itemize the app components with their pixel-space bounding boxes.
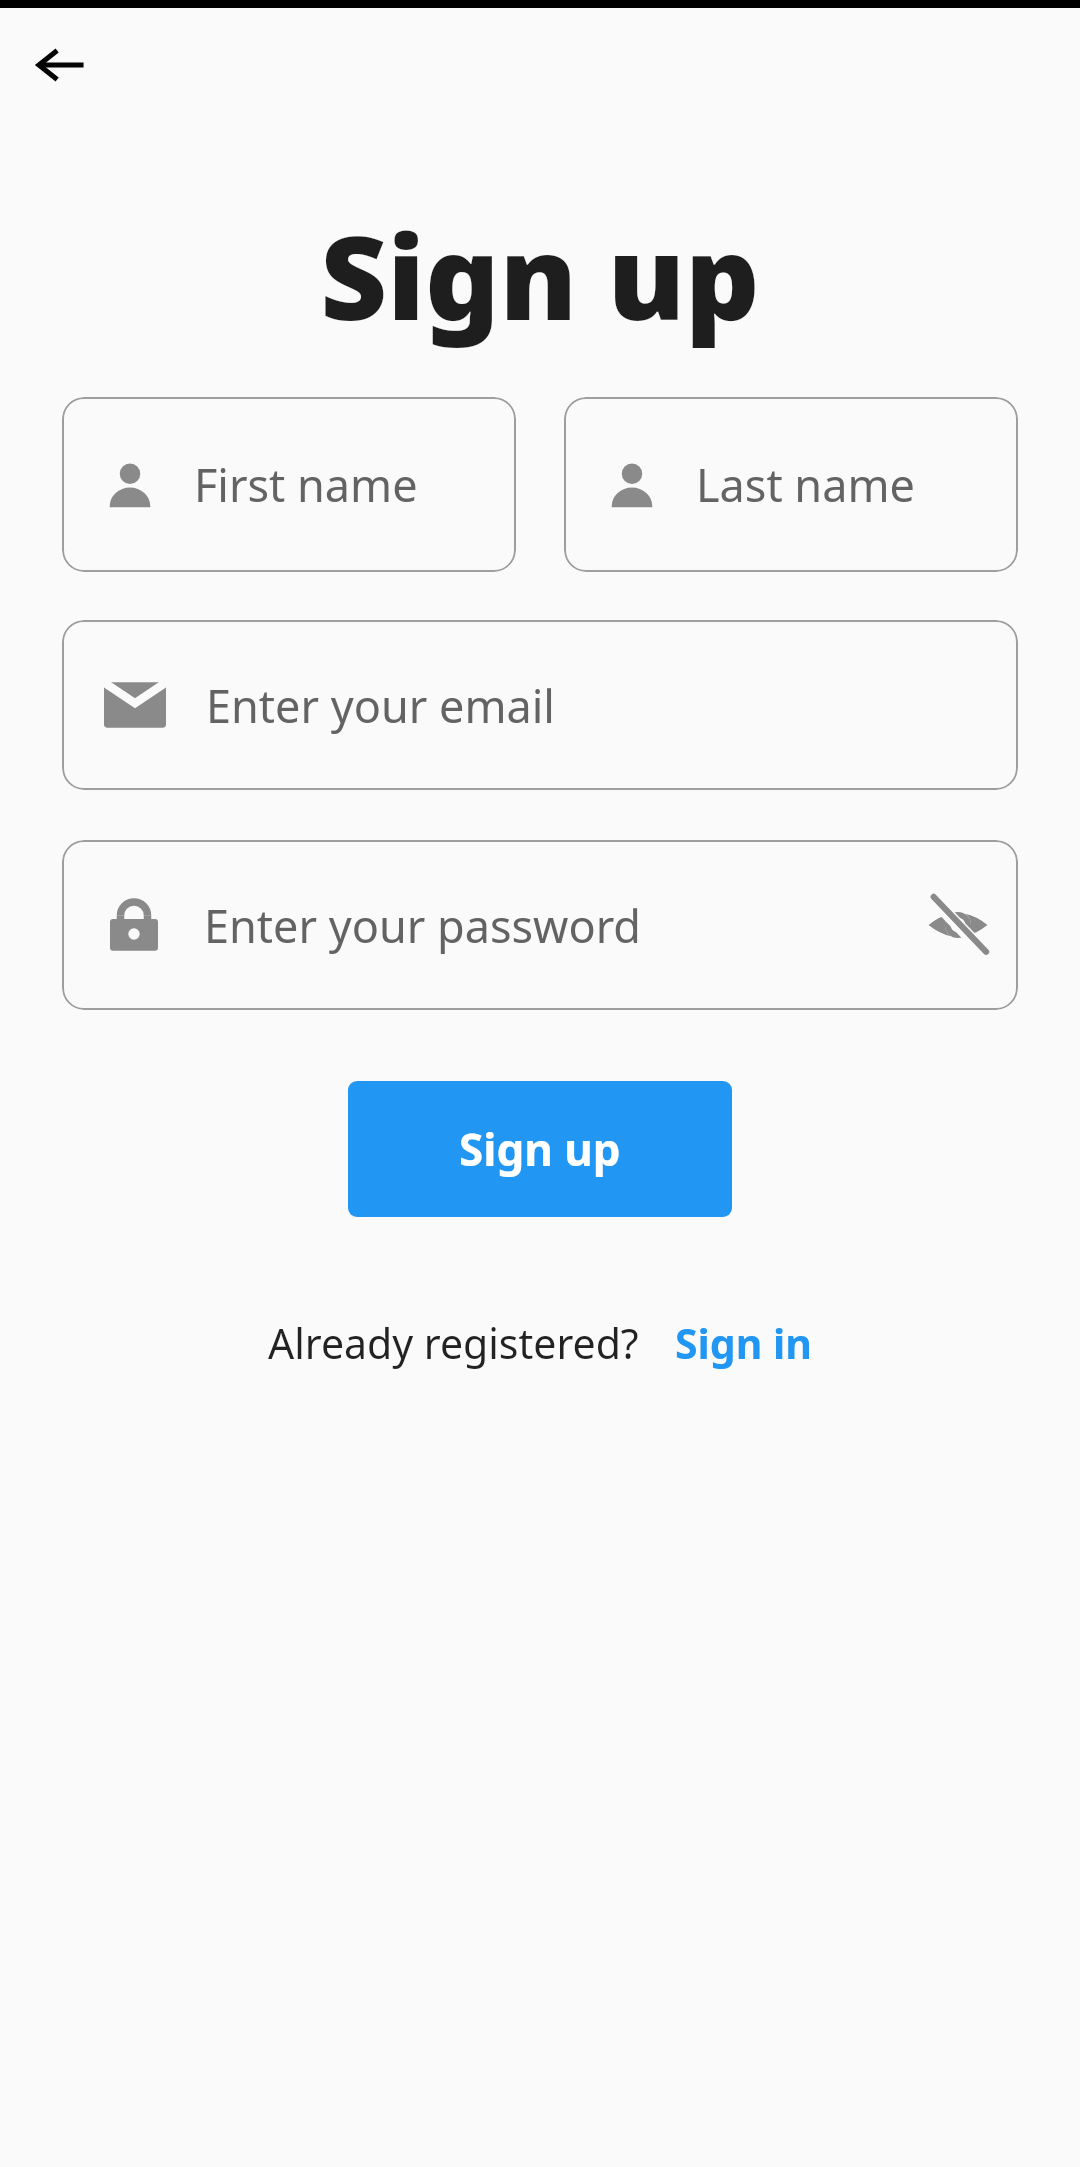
staticText: Enter your email xyxy=(206,675,1004,736)
button[interactable]: Back xyxy=(18,22,104,108)
button[interactable]: First name xyxy=(62,397,516,572)
button[interactable]: Show password xyxy=(912,879,1004,971)
staticText: Sign up xyxy=(0,196,1080,354)
button[interactable]: Last name xyxy=(564,397,1018,572)
button[interactable]: Enter your password xyxy=(62,840,1018,1010)
button[interactable]: Sign up xyxy=(348,1081,732,1217)
staticText: First name xyxy=(194,454,502,515)
button[interactable]: Sign in xyxy=(675,1315,812,1371)
staticText: Sign in xyxy=(675,1315,812,1371)
staticText: Enter your password xyxy=(204,895,912,956)
button[interactable]: Enter your email xyxy=(62,620,1018,790)
staticText: Sign up xyxy=(459,1119,621,1179)
staticText: Already registered? xyxy=(268,1315,639,1371)
staticText: Last name xyxy=(696,454,1004,515)
